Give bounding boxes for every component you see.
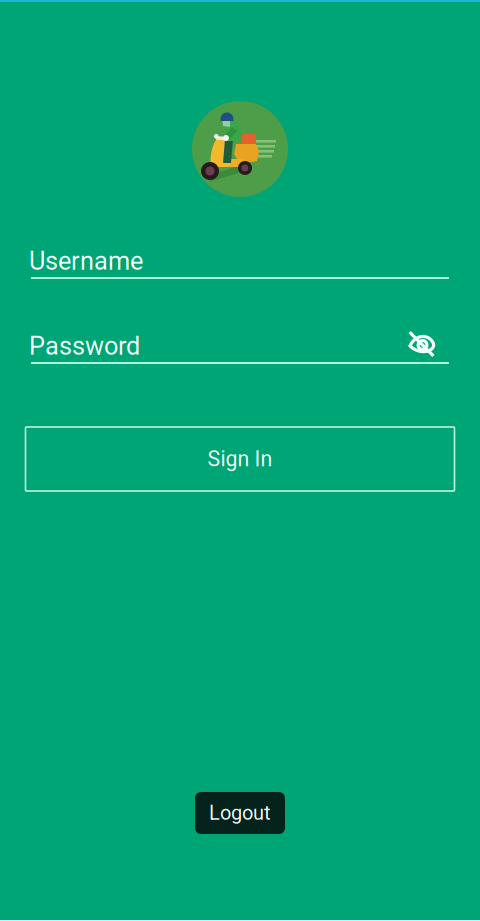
staticText: Logout [209, 801, 271, 825]
staticText: Username [29, 246, 143, 276]
button[interactable]: Logout [195, 792, 285, 834]
button[interactable]: Show password [408, 330, 435, 357]
staticText: Password [29, 331, 140, 361]
button[interactable]: Sign In [25, 427, 454, 491]
staticText: Sign In [207, 446, 272, 471]
